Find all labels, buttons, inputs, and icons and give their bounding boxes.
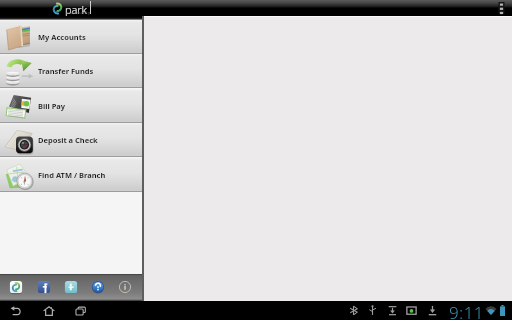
- button[interactable]: Park Community home: [8, 279, 24, 295]
- button[interactable]: Help: [90, 279, 106, 295]
- staticText: park: [65, 2, 87, 17]
- button[interactable]: Back: [5, 301, 27, 320]
- button[interactable]: Transfer Funds: [0, 54, 142, 88]
- button[interactable]: Deposit a Check: [0, 123, 142, 157]
- button[interactable]: Facebook: [36, 279, 52, 295]
- staticText: community: [66, 10, 91, 15]
- button[interactable]: Home: [38, 301, 60, 320]
- button[interactable]: More options: [497, 0, 506, 16]
- staticText: Find ATM / Branch: [38, 170, 106, 180]
- staticText: Deposit a Check: [38, 135, 98, 145]
- staticText: Bill Pay: [38, 101, 66, 111]
- button[interactable]: My Accounts: [0, 20, 142, 54]
- staticText: Transfer Funds: [38, 66, 94, 76]
- button[interactable]: Information: [117, 279, 133, 295]
- button[interactable]: Find ATM / Branch: [0, 158, 142, 192]
- button[interactable]: Bill Pay: [0, 89, 142, 123]
- staticText: My Accounts: [38, 32, 86, 42]
- button[interactable]: Recent apps: [70, 301, 92, 320]
- staticText: 9:11: [449, 301, 484, 320]
- button[interactable]: Twitter: [63, 279, 79, 295]
